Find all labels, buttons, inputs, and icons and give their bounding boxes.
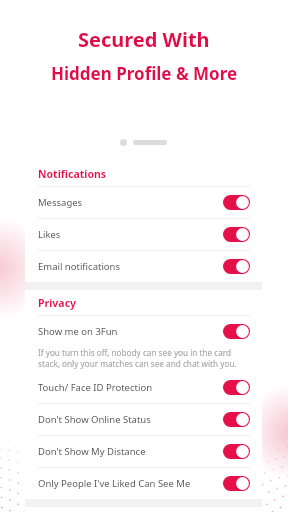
staticText: Don't Show My Distance: [38, 445, 146, 458]
staticText: Messages: [38, 196, 83, 209]
button[interactable]: Email notifications: [25, 251, 262, 282]
button[interactable]: Toggle on: [223, 380, 250, 395]
staticText: Don't Show Online Status: [38, 413, 151, 426]
staticText: Notifications: [38, 167, 107, 181]
button[interactable]: Toggle on: [223, 412, 250, 427]
staticText: Only People I've Liked Can See Me: [38, 477, 191, 490]
button[interactable]: Toggle on: [223, 195, 250, 210]
button[interactable]: Touch/ Face ID Protection: [25, 372, 262, 403]
staticText: Likes: [38, 228, 61, 241]
button[interactable]: Toggle on: [223, 227, 250, 242]
staticText: Email notifications: [38, 260, 121, 273]
staticText: Secured With: [78, 26, 210, 53]
button[interactable]: Don't Show My Distance: [25, 436, 262, 467]
button[interactable]: Toggle on: [223, 259, 250, 274]
staticText: Hidden Profile & More: [51, 62, 238, 85]
staticText: Privacy: [38, 296, 77, 310]
staticText: Touch/ Face ID Protection: [38, 381, 153, 394]
staticText: Show me on 3Fun: [38, 325, 118, 338]
button[interactable]: Messages: [25, 187, 262, 218]
button[interactable]: Show me on 3Fun: [25, 316, 262, 347]
button[interactable]: Toggle on: [223, 444, 250, 459]
button[interactable]: Toggle on: [223, 476, 250, 491]
button[interactable]: Only People I've Liked Can See Me: [25, 468, 262, 499]
button[interactable]: Likes: [25, 219, 262, 250]
button[interactable]: Don't Show Online Status: [25, 404, 262, 435]
staticText: If you turn this off, nobody can see you…: [38, 347, 246, 369]
button[interactable]: Toggle on: [223, 324, 250, 339]
